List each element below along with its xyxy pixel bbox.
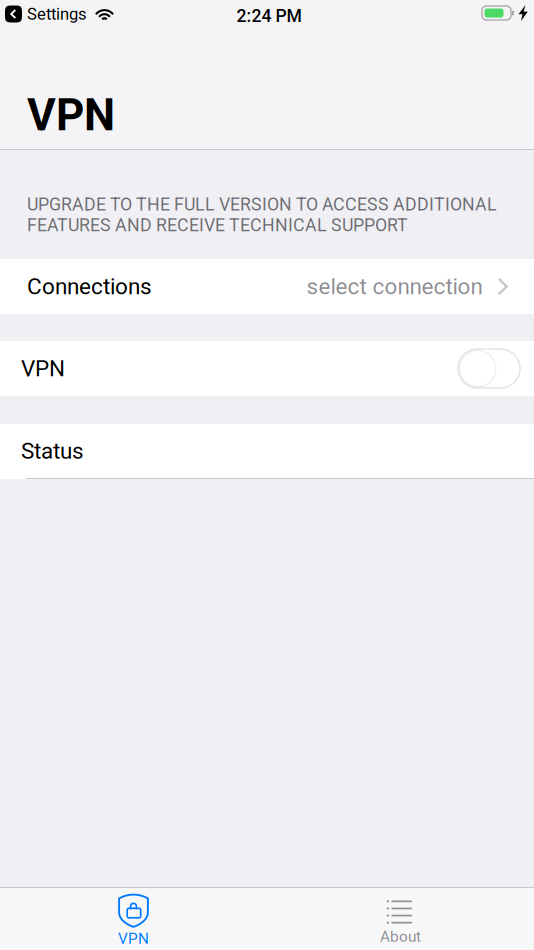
button[interactable]: VPN <box>458 349 520 388</box>
staticText: VPN <box>27 89 115 141</box>
button[interactable]: VPN <box>0 888 267 950</box>
button[interactable]: Connections <box>0 259 534 314</box>
button[interactable]: Back to Settings <box>0 0 89 29</box>
staticText: 2:24 PM <box>236 6 301 26</box>
staticText: Status <box>21 438 84 464</box>
staticText: select connection <box>306 273 482 300</box>
staticText: UPGRADE TO THE FULL VERSION TO ACCESS AD… <box>27 194 497 236</box>
staticText: About <box>380 927 421 945</box>
staticText: VPN <box>118 929 149 947</box>
staticText: Connections <box>27 273 152 300</box>
staticText: Settings <box>27 4 87 24</box>
button[interactable]: About <box>267 888 534 950</box>
staticText: VPN <box>21 355 65 382</box>
